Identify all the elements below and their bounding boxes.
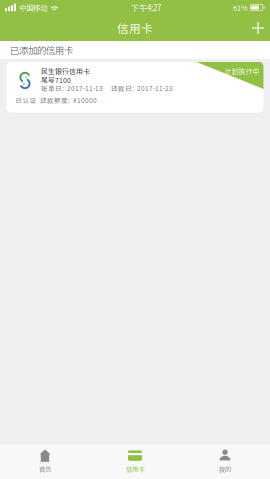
button[interactable]: 添加信用卡 (246, 17, 270, 39)
button[interactable]: 我的 (180, 444, 270, 479)
staticText: 信用卡 (117, 19, 153, 36)
staticText: 中国移动 (19, 2, 47, 13)
button[interactable]: 计划执行中 (6, 62, 263, 112)
staticText: 民生银行信用卡 (41, 66, 90, 76)
button[interactable]: 首页 (0, 444, 90, 479)
staticText: 信用卡 (126, 464, 144, 474)
staticText: 尾号7100 (41, 75, 71, 85)
staticText: 计划执行中 (224, 66, 259, 76)
staticText: ¥10000 (73, 95, 97, 105)
staticText: 首页 (39, 464, 51, 474)
staticText: 账单日: (41, 83, 64, 93)
staticText: 已认证 (15, 95, 36, 105)
staticText: 61% (233, 2, 248, 13)
staticText: 已添加的信用卡 (10, 43, 73, 57)
staticText: 2017-11-23 (137, 83, 173, 93)
button[interactable]: 信用卡 (90, 444, 180, 479)
staticText: 还款日: (111, 83, 134, 93)
staticText: 下午4:27 (131, 2, 161, 13)
staticText: 2017-11-13 (67, 83, 103, 93)
staticText: 我的 (219, 464, 231, 474)
staticText: 还款额度: (40, 95, 70, 105)
